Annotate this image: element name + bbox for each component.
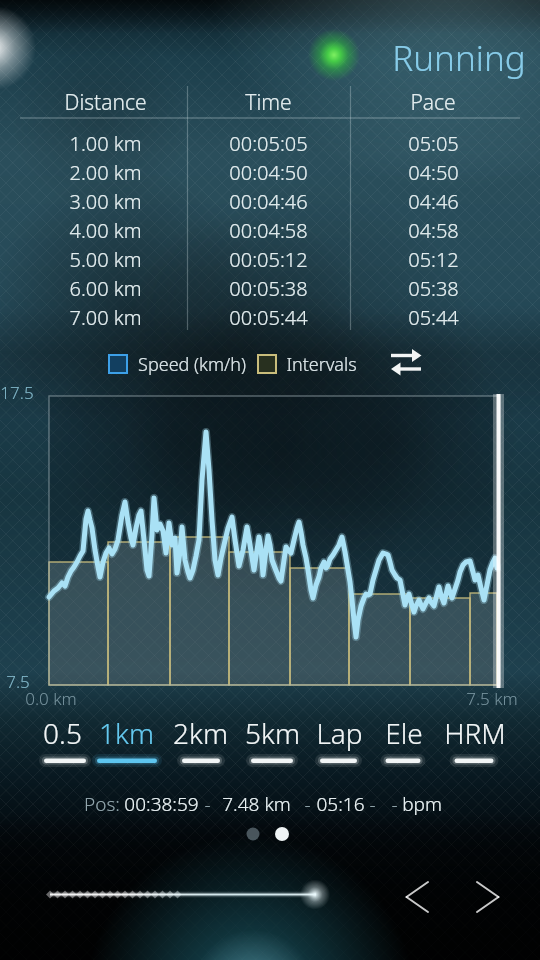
staticText: 0.5	[43, 714, 82, 752]
staticText: 00:05:44	[229, 304, 308, 331]
staticText: 7.5 km	[466, 687, 518, 707]
staticText: 00:38:59	[124, 791, 199, 815]
staticText: -	[204, 791, 211, 815]
staticText: HRM	[444, 714, 506, 752]
button[interactable]: 1km	[86, 706, 166, 760]
staticText: 05:12	[408, 246, 459, 273]
button[interactable]: 0.5	[22, 706, 102, 760]
staticText: 1.00 km	[69, 130, 142, 157]
staticText: 00:05:38	[229, 275, 308, 302]
button[interactable]: Ele	[364, 706, 444, 760]
staticText: 0.0 km	[25, 687, 77, 707]
staticText: 4.00 km	[69, 217, 142, 244]
staticText: -	[304, 791, 311, 815]
staticText: bpm	[402, 791, 442, 815]
staticText: 6.00 km	[69, 275, 142, 302]
staticText: 04:50	[408, 159, 459, 186]
staticText: 7.00 km	[69, 304, 142, 331]
staticText: 04:58	[408, 217, 459, 244]
staticText: Pos:	[84, 791, 120, 815]
staticText: 2.00 km	[69, 159, 142, 186]
staticText: 00:05:05	[229, 130, 308, 157]
staticText: Time	[245, 88, 292, 114]
button[interactable]: HRM	[435, 706, 515, 760]
staticText: 00:04:50	[229, 159, 308, 186]
staticText: 3.00 km	[69, 188, 142, 215]
staticText: Intervals	[286, 352, 357, 376]
staticText: -	[391, 791, 398, 815]
staticText: 7.48 km	[222, 791, 291, 815]
staticText: 2km	[173, 714, 228, 752]
staticText: 04:46	[408, 188, 459, 215]
staticText: 00:04:58	[229, 217, 308, 244]
button[interactable]: 2km	[160, 706, 240, 760]
staticText: -	[369, 791, 376, 815]
button[interactable]	[468, 876, 508, 918]
button[interactable]: Lap	[299, 706, 379, 760]
button[interactable]	[383, 342, 429, 382]
staticText: 1km	[99, 714, 154, 752]
staticText: Speed (km/h)	[138, 352, 246, 376]
staticText: Ele	[385, 714, 423, 752]
staticText: 7.5	[6, 670, 30, 690]
staticText: 05:05	[408, 130, 459, 157]
staticText: Pace	[410, 88, 456, 114]
button[interactable]	[240, 820, 296, 848]
staticText: Lap	[316, 714, 363, 752]
button[interactable]: 5km	[232, 706, 312, 760]
staticText: 17.5	[0, 381, 34, 401]
staticText: 05:16	[316, 791, 365, 815]
staticText: 05:44	[408, 304, 459, 331]
staticText: 05:38	[408, 275, 459, 302]
button[interactable]	[398, 876, 438, 918]
staticText: Running	[392, 34, 526, 80]
staticText: 5km	[245, 714, 300, 752]
staticText: 5.00 km	[69, 246, 142, 273]
staticText: 00:05:12	[229, 246, 308, 273]
staticText: Distance	[64, 88, 147, 114]
staticText: 00:04:46	[229, 188, 308, 215]
